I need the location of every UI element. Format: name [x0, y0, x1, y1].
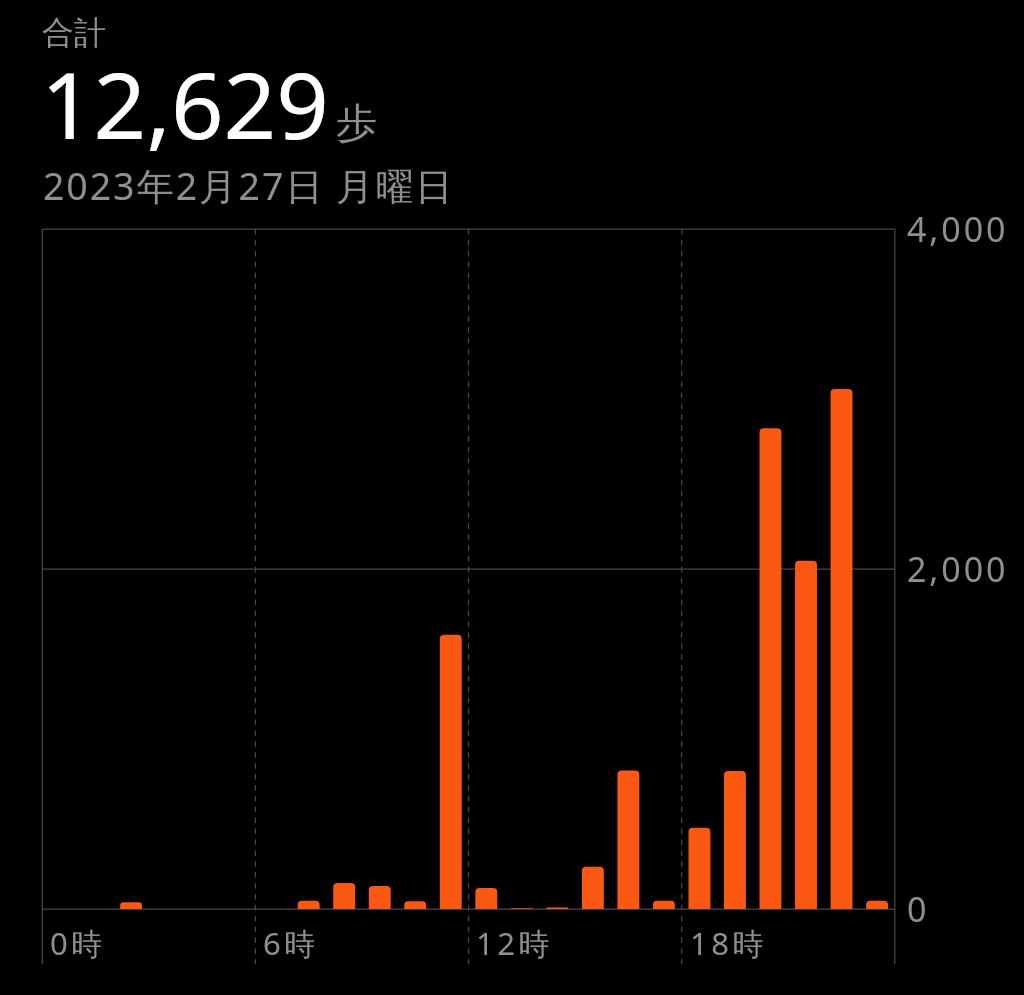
button[interactable]: 10時 45歩: [398, 229, 434, 909]
staticText: 12,629: [41, 41, 329, 166]
button[interactable]: 14時 9歩: [540, 229, 576, 909]
button[interactable]: 0時 0歩: [42, 229, 78, 909]
button[interactable]: 9時 136歩: [362, 229, 398, 909]
button[interactable]: 11時 1613歩: [433, 229, 469, 909]
staticText: 4,000: [907, 206, 1009, 252]
button[interactable]: 5時 0歩: [220, 229, 256, 909]
staticText: 12時: [476, 922, 553, 964]
button[interactable]: 2時 39歩: [113, 229, 149, 909]
button[interactable]: 17時 49歩: [646, 229, 682, 909]
button[interactable]: 8時 153歩: [326, 229, 362, 909]
staticText: 0: [907, 886, 930, 932]
button[interactable]: 23時 49歩: [859, 229, 895, 909]
button[interactable]: 3時 0歩: [149, 229, 185, 909]
staticText: 合計: [42, 13, 106, 53]
button[interactable]: 20時 2828歩: [753, 229, 789, 909]
button[interactable]: 12時 123歩: [469, 229, 505, 909]
button[interactable]: 7時 49歩: [291, 229, 327, 909]
button[interactable]: 6時 0歩: [255, 229, 291, 909]
button[interactable]: 19時 812歩: [717, 229, 753, 909]
button[interactable]: 21時 2048歩: [788, 229, 824, 909]
button[interactable]: 16時 815歩: [611, 229, 647, 909]
staticText: 0時: [50, 922, 106, 964]
staticText: 18時: [690, 922, 767, 964]
staticText: 2,000: [907, 546, 1009, 592]
button[interactable]: 1時 0歩: [78, 229, 114, 909]
button[interactable]: 4時 0歩: [184, 229, 220, 909]
button[interactable]: 15時 249歩: [575, 229, 611, 909]
button[interactable]: 13時 4歩: [504, 229, 540, 909]
staticText: 6時: [263, 922, 319, 964]
button[interactable]: 22時 3059歩: [824, 229, 860, 909]
staticText: 2023年2月27日 月曜日: [43, 160, 455, 211]
staticText: 歩: [336, 98, 377, 150]
button[interactable]: 18時 478歩: [682, 229, 718, 909]
